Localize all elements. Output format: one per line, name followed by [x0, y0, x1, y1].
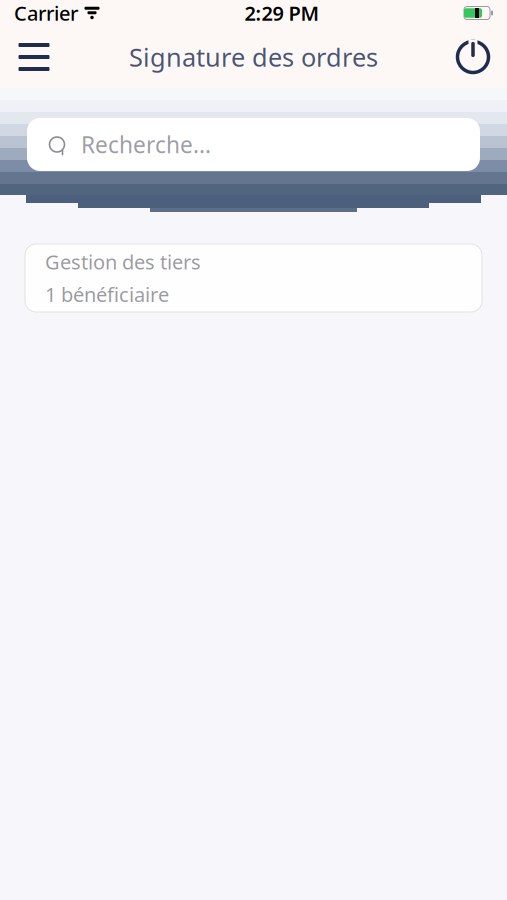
staticText: Signature des ordres [129, 40, 378, 74]
staticText: Recherche... [81, 129, 211, 159]
staticText: 1 bénéficiaire [45, 281, 169, 308]
staticText: 2:29 PM [244, 0, 319, 26]
staticText: Gestion des tiers [45, 248, 201, 275]
staticText: Carrier [14, 0, 78, 26]
button[interactable]: Power [447, 35, 499, 79]
button[interactable]: Menu [8, 35, 60, 79]
button[interactable]: Gestion des tiers [25, 244, 482, 312]
button[interactable]: Recherche... [0, 118, 507, 171]
